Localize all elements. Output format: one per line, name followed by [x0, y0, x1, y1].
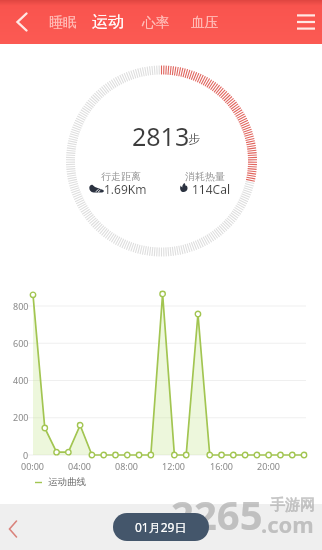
staticText: 400	[13, 374, 29, 386]
staticText: 200	[13, 411, 29, 423]
button[interactable]: 01月29日	[113, 513, 209, 541]
staticText: 血压	[191, 14, 219, 31]
staticText: 2813	[132, 119, 190, 153]
staticText: 01月29日	[135, 519, 187, 535]
button[interactable]: 行走距离	[101, 170, 141, 183]
staticText: 消耗热量	[185, 170, 225, 183]
staticText: 20:00	[257, 460, 281, 472]
staticText: 600	[13, 337, 29, 349]
staticText: 行走距离	[101, 170, 141, 183]
staticText: 800	[13, 300, 29, 312]
staticText: 手游网	[270, 496, 315, 515]
staticText: 0	[23, 449, 29, 461]
staticText: 16:00	[210, 460, 234, 472]
staticText: 运动	[92, 12, 124, 32]
button[interactable]: 消耗热量	[185, 170, 225, 183]
staticText: 步	[188, 131, 200, 146]
button[interactable]: 运动	[91, 7, 125, 37]
button[interactable]: Previous day	[0, 516, 26, 542]
staticText: 心率	[142, 14, 170, 31]
staticText: 运动曲线	[48, 476, 86, 488]
staticText: 114Cal	[192, 181, 231, 197]
staticText: 2265	[171, 487, 263, 541]
staticText: 睡眠	[49, 14, 77, 31]
button[interactable]: Back	[5, 5, 39, 39]
button[interactable]: 运动曲线	[35, 476, 86, 488]
staticText: 08:00	[115, 460, 139, 472]
staticText: 04:00	[68, 460, 92, 472]
staticText: 1.69Km	[104, 181, 147, 197]
staticText: .com	[261, 509, 314, 539]
button[interactable]: 心率	[141, 9, 171, 36]
staticText: 00:00	[21, 460, 45, 472]
button[interactable]: Menu	[289, 5, 322, 39]
button[interactable]: 睡眠	[48, 9, 78, 36]
button[interactable]: 血压	[190, 9, 220, 36]
staticText: 12:00	[162, 460, 186, 472]
